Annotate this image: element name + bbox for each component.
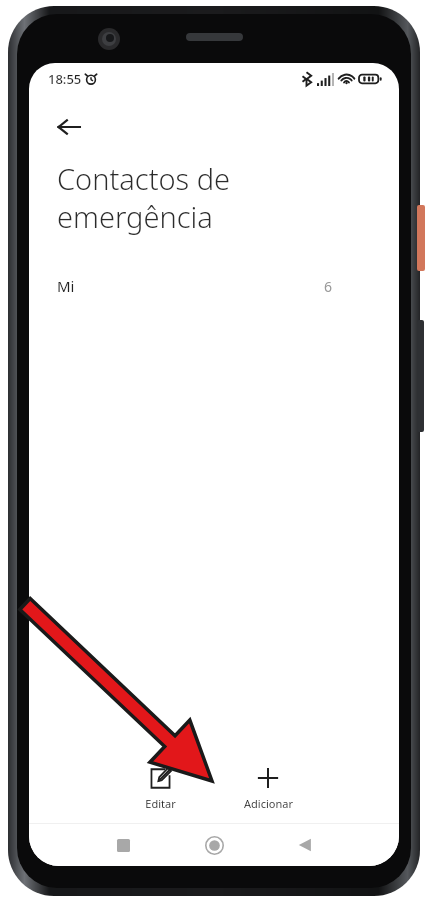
button[interactable]: Editar: [121, 761, 199, 815]
button[interactable]: Início: [192, 824, 236, 866]
button[interactable]: Adicionar: [229, 761, 307, 815]
button[interactable]: Mi: [29, 264, 399, 308]
staticText: 6: [324, 277, 333, 296]
staticText: Adicionar: [244, 796, 293, 811]
button[interactable]: Voltar: [43, 101, 95, 153]
staticText: Contactos de emergência: [57, 159, 231, 236]
button[interactable]: Voltar: [283, 824, 327, 866]
staticText: Mi: [57, 276, 75, 296]
staticText: 18:55: [48, 70, 82, 88]
staticText: Editar: [145, 796, 176, 811]
button[interactable]: Recentes: [101, 824, 145, 866]
